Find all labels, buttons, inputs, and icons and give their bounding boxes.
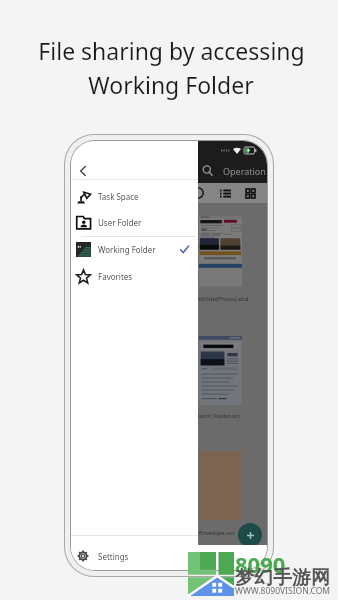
- button[interactable]: Task Space: [71, 183, 198, 210]
- staticText: Operation: [223, 165, 266, 177]
- staticText: Plastic Folder.xct: [194, 412, 241, 420]
- button[interactable]: Settings: [71, 545, 198, 567]
- staticText: File sharing by accessing: [38, 35, 305, 66]
- button[interactable]: Favorites: [71, 263, 198, 290]
- staticText: Task Space: [98, 191, 139, 202]
- button[interactable]: Back: [76, 164, 90, 178]
- button[interactable]: Add new file: [238, 523, 262, 545]
- button[interactable]: List view: [220, 188, 231, 199]
- button[interactable]: Search: [202, 165, 214, 177]
- staticText: Settings: [98, 551, 129, 562]
- staticText: Favorites: [98, 271, 133, 282]
- staticText: 梦幻手游网: [235, 566, 330, 590]
- staticText: Envelope.xct: [199, 529, 235, 537]
- button[interactable]: Working Folder: [71, 236, 198, 263]
- button[interactable]: User Folder: [71, 209, 198, 236]
- staticText: WebSite(Photo).xbd: [193, 295, 249, 303]
- button[interactable]: Grid view: [246, 189, 255, 198]
- staticText: Working Folder: [98, 244, 156, 255]
- staticText: WWW.8090VISION.COM: [235, 585, 331, 597]
- staticText: User Folder: [98, 217, 142, 228]
- staticText: Working Folder: [88, 69, 254, 100]
- staticText: 8090: [235, 549, 286, 579]
